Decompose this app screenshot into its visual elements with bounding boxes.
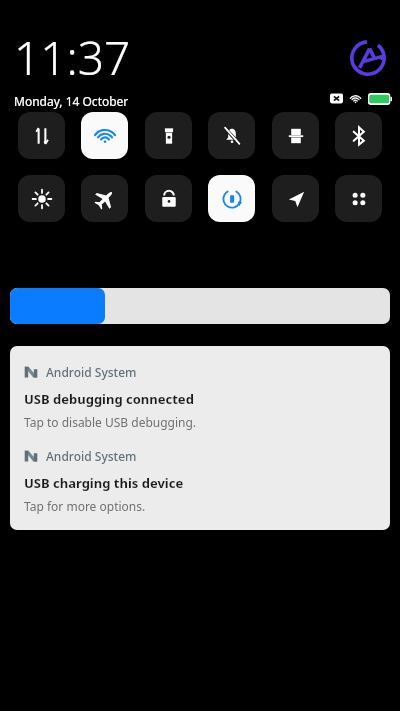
button[interactable]: Mobile data xyxy=(18,112,65,159)
staticText: USB charging this device xyxy=(24,474,184,492)
staticText: Tap for more options. xyxy=(24,498,146,514)
button[interactable]: Flashlight xyxy=(145,112,192,159)
staticText: Android System xyxy=(46,364,137,380)
staticText: Tap to disable USB debugging. xyxy=(24,414,197,430)
button[interactable]: Android System xyxy=(10,346,390,430)
button[interactable]: Auto rotate xyxy=(208,175,255,222)
staticText: Monday, 14 October xyxy=(14,93,129,109)
button[interactable]: Brightness slider xyxy=(10,288,390,324)
button[interactable]: Brightness xyxy=(18,175,65,222)
button[interactable]: Screen lock xyxy=(145,175,192,222)
staticText: 11:37 xyxy=(14,26,131,89)
button[interactable]: Android System xyxy=(10,430,390,514)
button[interactable]: More tiles xyxy=(335,175,382,222)
button[interactable]: Location xyxy=(272,175,319,222)
button[interactable]: Screenshot xyxy=(272,112,319,159)
button[interactable]: Do not disturb xyxy=(208,112,255,159)
button[interactable]: Wi-Fi xyxy=(81,112,128,159)
button[interactable]: Airplane mode xyxy=(81,175,128,222)
button[interactable]: Bluetooth xyxy=(335,112,382,159)
staticText: Android System xyxy=(46,448,137,464)
staticText: USB debugging connected xyxy=(24,390,194,408)
button[interactable]: Avengers profile xyxy=(350,40,386,76)
